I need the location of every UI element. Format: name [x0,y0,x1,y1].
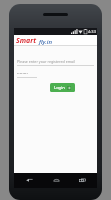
button[interactable]: Please enter your registered email [17,59,94,66]
staticText: Please enter your registered email [17,59,75,64]
button[interactable]: Home [45,173,67,188]
staticText: fly.in [39,38,53,46]
button[interactable]: Login [50,83,75,92]
button[interactable]: Back [18,173,40,188]
staticText: Login [54,85,65,90]
button[interactable]: •••••••• [17,71,94,78]
button[interactable]: Recent apps [71,173,93,188]
staticText: Smart [16,36,37,46]
staticText: •••••••• [17,71,28,76]
staticText: 4:33 [88,29,96,34]
button[interactable]: Smart fly.in home [16,36,53,46]
